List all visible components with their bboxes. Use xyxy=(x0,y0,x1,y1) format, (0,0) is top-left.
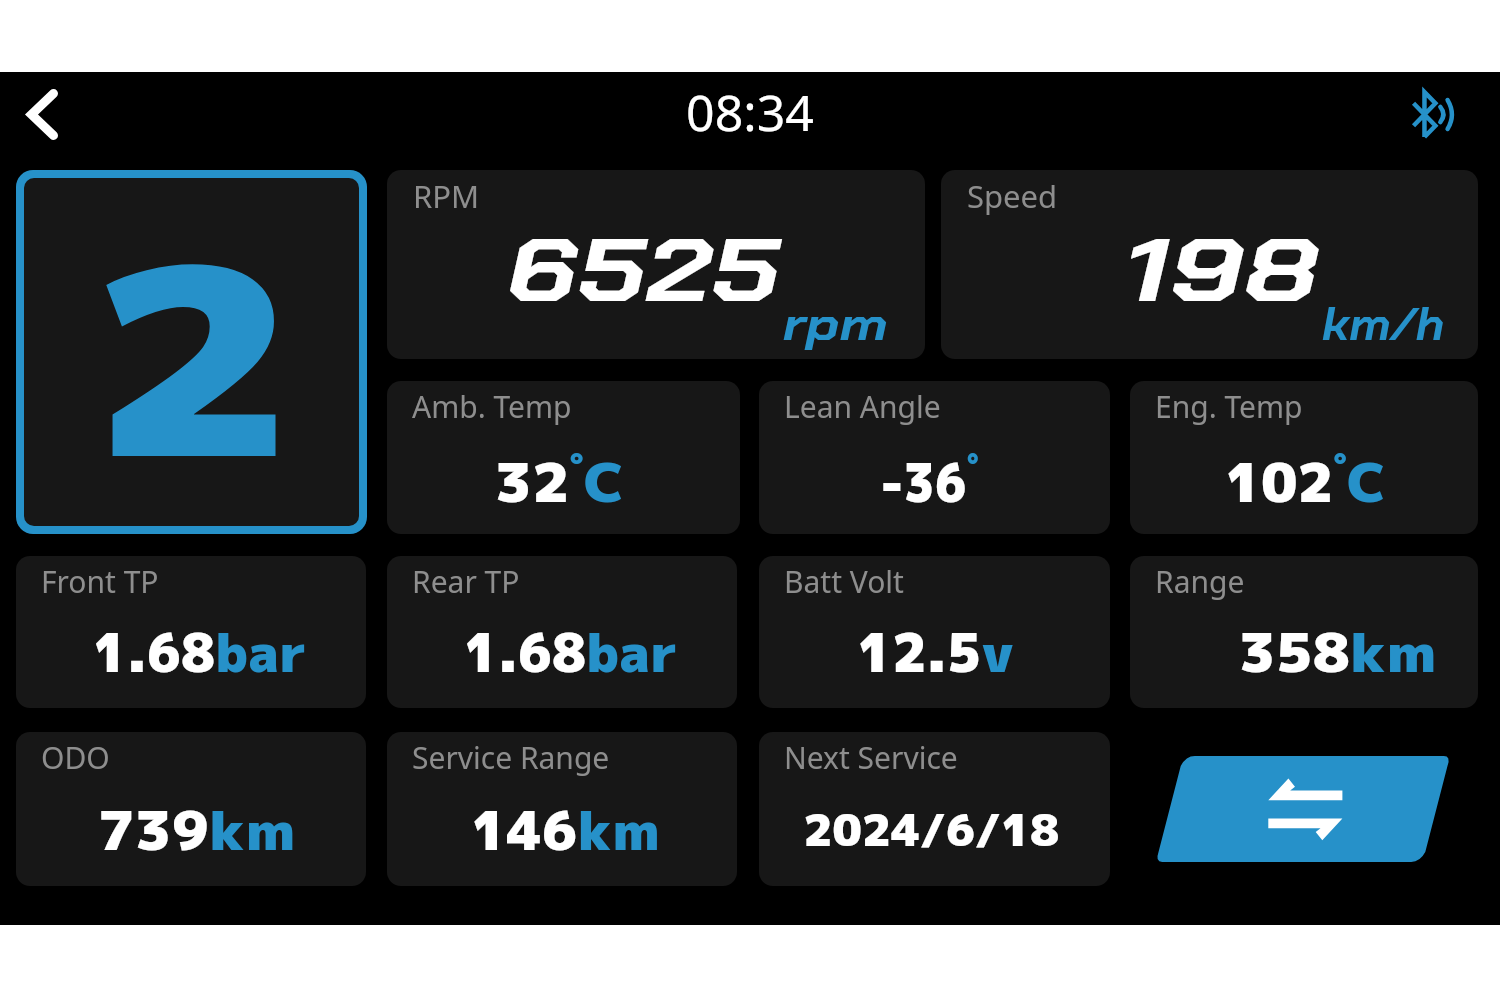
staticText: Front TP xyxy=(41,561,159,602)
staticText: 198 xyxy=(1123,214,1319,328)
staticText: 2 xyxy=(89,178,296,526)
staticText: 12.5v xyxy=(857,616,1015,689)
button[interactable]: Batt Volt xyxy=(759,556,1110,708)
staticText: Lean Angle xyxy=(784,386,941,427)
button[interactable]: Eng. Temp xyxy=(1130,381,1478,534)
button[interactable]: ODO xyxy=(16,732,366,886)
button[interactable]: Switch units xyxy=(1155,756,1451,862)
staticText: 6525 xyxy=(506,214,780,328)
staticText: 102°C xyxy=(1225,442,1387,519)
button[interactable]: RPM xyxy=(387,170,925,359)
staticText: 1.68bar xyxy=(93,616,307,689)
button[interactable]: Range xyxy=(1130,556,1478,708)
button[interactable]: Bluetooth connected xyxy=(1394,79,1470,149)
staticText: 1.68bar xyxy=(464,616,678,689)
staticText: Rear TP xyxy=(412,561,520,602)
staticText: Range xyxy=(1155,561,1245,602)
button[interactable]: 2 xyxy=(24,178,359,526)
button[interactable]: Lean Angle xyxy=(759,381,1110,534)
staticText: Eng. Temp xyxy=(1155,386,1303,427)
staticText: RPM xyxy=(413,175,480,217)
staticText: 32°C xyxy=(495,442,624,519)
staticText: Service Range xyxy=(412,737,610,778)
button[interactable]: Speed xyxy=(941,170,1478,359)
button[interactable]: Front TP xyxy=(16,556,366,708)
button[interactable]: Amb. Temp xyxy=(387,381,740,534)
staticText: 08:34 xyxy=(0,78,1500,146)
staticText: Next Service xyxy=(784,737,958,778)
staticText: ODO xyxy=(41,737,110,778)
staticText: Batt Volt xyxy=(784,561,904,602)
staticText: 146km xyxy=(471,794,661,867)
staticText: Speed xyxy=(967,175,1058,217)
staticText: 739km xyxy=(98,794,296,867)
button[interactable]: Rear TP xyxy=(387,556,737,708)
staticText: 2024/6/18 xyxy=(803,800,1060,860)
staticText: -36° xyxy=(880,442,979,519)
staticText: km/h xyxy=(1322,295,1445,353)
button[interactable]: Back xyxy=(4,64,80,164)
staticText: rpm xyxy=(783,295,889,353)
staticText: 358km xyxy=(1239,616,1437,689)
button[interactable]: Next Service xyxy=(759,732,1110,886)
staticText: Amb. Temp xyxy=(412,386,572,427)
button[interactable]: Service Range xyxy=(387,732,737,886)
